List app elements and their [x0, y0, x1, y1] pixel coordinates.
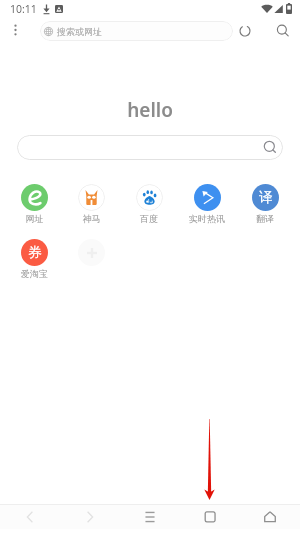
staticText: 实时热讯 [178, 213, 236, 224]
staticText: 网址 [6, 213, 63, 224]
button[interactable]: Add shortcut [78, 239, 105, 266]
staticText: 百度 [120, 213, 178, 224]
button[interactable]: 搜索或网址 [40, 21, 233, 41]
staticText: 翻译 [236, 213, 294, 224]
button[interactable]: Menu [120, 505, 180, 529]
staticText: 神马 [63, 213, 120, 224]
button[interactable]: 实时热讯 [178, 184, 236, 224]
button[interactable]: Search [272, 20, 294, 42]
button[interactable]: 网址 [6, 184, 63, 224]
button[interactable]: Refresh [235, 21, 255, 41]
staticText: 译 [259, 189, 273, 207]
button[interactable]: 百度 [120, 184, 178, 224]
staticText: 爱淘宝 [6, 268, 63, 279]
button[interactable]: 译 [236, 184, 294, 224]
staticText: hello [0, 97, 300, 123]
staticText: 券 [28, 244, 42, 262]
staticText: 搜索或网址 [57, 26, 102, 37]
button[interactable] [17, 135, 283, 160]
staticText: 10:11 [10, 2, 37, 16]
button[interactable]: More options [5, 20, 25, 40]
button[interactable]: 券 [6, 239, 63, 279]
button[interactable]: Tabs [180, 505, 240, 529]
button[interactable]: 神马 [63, 184, 120, 224]
button[interactable]: Home [240, 505, 300, 529]
